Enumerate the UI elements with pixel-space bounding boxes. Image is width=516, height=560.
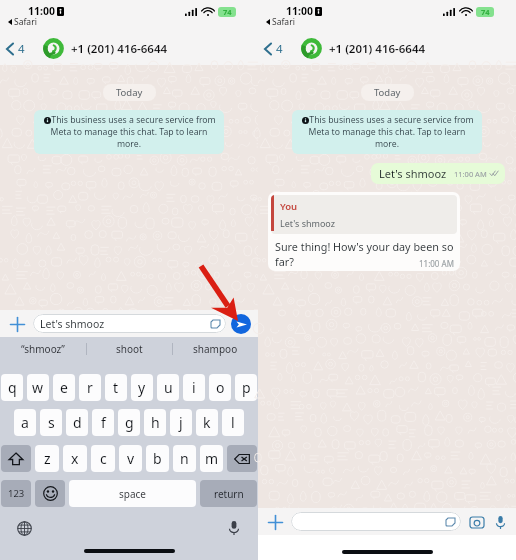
staticText: l: [231, 413, 235, 432]
staticText: x: [71, 449, 79, 468]
button[interactable]: i: [183, 374, 205, 401]
button[interactable]: j: [170, 409, 192, 436]
staticText: v: [127, 449, 135, 468]
button[interactable]: Let's shmooz: [371, 163, 505, 184]
button[interactable]: This business uses a secure service from…: [292, 110, 482, 154]
staticText: g: [125, 413, 134, 432]
staticText: i: [192, 378, 196, 397]
button[interactable]: This business uses a secure service from…: [34, 110, 224, 154]
staticText: Today: [374, 86, 401, 99]
button[interactable]: d: [66, 409, 88, 436]
button[interactable]: q: [1, 374, 23, 401]
staticText: u: [164, 378, 173, 397]
staticText: n: [180, 449, 189, 468]
button[interactable]: o: [209, 374, 231, 401]
staticText: “shmooz”: [21, 342, 65, 356]
staticText: s: [48, 413, 55, 432]
button[interactable]: Attach: [7, 314, 27, 334]
button[interactable]: Camera: [468, 513, 486, 531]
staticText: shoot: [116, 342, 143, 356]
staticText: w: [32, 378, 44, 397]
button[interactable]: Send: [231, 314, 251, 334]
button[interactable]: e: [53, 374, 75, 401]
staticText: Safari: [272, 16, 295, 28]
button[interactable]: x: [63, 445, 87, 472]
button[interactable]: Shift: [1, 445, 31, 472]
staticText: 74: [481, 7, 490, 17]
staticText: 123: [8, 487, 25, 500]
button[interactable]: s: [40, 409, 62, 436]
button[interactable]: return: [200, 480, 257, 507]
staticText: 4: [18, 41, 25, 57]
staticText: Safari: [14, 16, 37, 28]
staticText: c: [100, 449, 107, 468]
staticText: Let's shmooz: [379, 166, 447, 181]
staticText: Today: [116, 86, 143, 99]
staticText: m: [205, 449, 219, 468]
staticText: b: [153, 449, 162, 468]
button[interactable]: 123: [1, 480, 31, 507]
button[interactable]: v: [119, 445, 142, 472]
staticText: t: [113, 378, 119, 397]
button[interactable]: t: [105, 374, 127, 401]
button[interactable]: Change keyboard: [14, 518, 34, 538]
button[interactable]: z: [35, 445, 59, 472]
button[interactable]: f: [92, 409, 114, 436]
button[interactable]: You: [268, 192, 460, 271]
button[interactable]: w: [27, 374, 49, 401]
staticText: o: [216, 378, 225, 397]
staticText: z: [44, 449, 51, 468]
staticText: j: [179, 413, 183, 432]
button[interactable]: Back: [4, 37, 27, 61]
button[interactable]: c: [91, 445, 115, 472]
button[interactable]: n: [173, 445, 196, 472]
button[interactable]: k: [196, 409, 218, 436]
button[interactable]: y: [131, 374, 153, 401]
button[interactable]: Attach: [265, 512, 285, 532]
staticText: k: [203, 413, 211, 432]
staticText: +1 (201) 416-6644: [329, 41, 426, 57]
staticText: Sure thing! How's your day been so far?: [275, 239, 454, 269]
staticText: f: [101, 413, 106, 432]
staticText: a: [21, 413, 29, 432]
staticText: This business uses a secure service from…: [40, 114, 218, 150]
button[interactable]: Let's shmooz: [33, 314, 226, 333]
button[interactable]: shampoo: [172, 337, 258, 360]
staticText: h: [151, 413, 160, 432]
button[interactable]: a: [14, 409, 36, 436]
staticText: space: [119, 487, 146, 501]
staticText: 11:00: [28, 4, 55, 18]
button[interactable]: Backspace: [227, 445, 257, 472]
button[interactable]: l: [222, 409, 244, 436]
button[interactable]: h: [144, 409, 166, 436]
staticText: 74: [223, 7, 232, 17]
button[interactable]: Dictate: [224, 518, 244, 538]
button[interactable]: m: [200, 445, 223, 472]
staticText: y: [138, 378, 146, 397]
button[interactable]: [291, 512, 461, 531]
button[interactable]: g: [118, 409, 140, 436]
button[interactable]: r: [79, 374, 101, 401]
staticText: q: [8, 378, 17, 397]
button[interactable]: b: [146, 445, 169, 472]
staticText: Let's shmooz: [40, 317, 210, 331]
staticText: r: [87, 378, 93, 397]
button[interactable]: Voice message: [491, 513, 509, 531]
staticText: 11:00: [286, 4, 313, 18]
staticText: Let's shmooz: [280, 217, 335, 229]
button[interactable]: space: [69, 480, 196, 507]
staticText: 4: [276, 41, 283, 57]
button[interactable]: p: [235, 374, 257, 401]
button[interactable]: Emoji: [35, 480, 65, 507]
staticText: You: [280, 200, 298, 213]
button[interactable]: Back: [262, 37, 285, 61]
staticText: e: [60, 378, 68, 397]
button[interactable]: u: [157, 374, 179, 401]
button[interactable]: shoot: [86, 337, 172, 360]
button[interactable]: “shmooz”: [0, 337, 86, 360]
staticText: 11:00 AM: [419, 258, 454, 269]
staticText: +1 (201) 416-6644: [71, 41, 168, 57]
staticText: 11:00 AM: [454, 169, 487, 179]
staticText: return: [214, 487, 244, 501]
